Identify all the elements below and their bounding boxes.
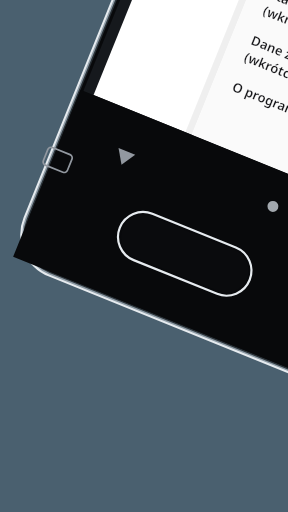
button[interactable]: O programie bbox=[146, 308, 226, 344]
button[interactable]: Stan Viatoll (wkrótce...) bbox=[196, 224, 276, 264]
button[interactable]: Dane z pojazdu (wkrótce...) bbox=[172, 266, 256, 308]
button[interactable]: Brama Płatnicza bbox=[232, 192, 288, 216]
